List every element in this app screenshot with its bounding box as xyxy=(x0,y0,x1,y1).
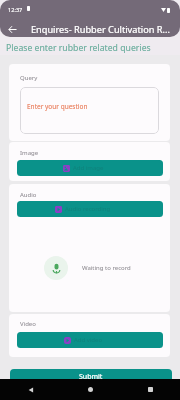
button[interactable]: Submit xyxy=(10,369,172,385)
button[interactable]: Enter your question xyxy=(20,87,159,134)
button[interactable]: Audio recording xyxy=(17,201,163,217)
staticText: Enter your question xyxy=(27,102,88,111)
staticText: 12:37 xyxy=(8,6,23,14)
staticText: Add video xyxy=(74,336,103,344)
button[interactable]: Back xyxy=(20,379,41,400)
button[interactable]: Start recording xyxy=(44,256,68,280)
staticText: Audio recording xyxy=(65,205,111,213)
staticText: Enquires- Rubber Cultivation R... xyxy=(31,23,170,36)
button[interactable]: Back xyxy=(2,19,22,37)
button[interactable]: Recent apps xyxy=(140,379,161,400)
staticText: Query xyxy=(20,74,38,82)
staticText: Please enter rubber related queries xyxy=(6,42,151,54)
staticText: Add image xyxy=(73,164,104,172)
button[interactable]: Add video xyxy=(17,332,163,348)
staticText: Audio xyxy=(20,191,37,199)
staticText: Submit xyxy=(79,372,103,382)
button[interactable]: Add image xyxy=(17,160,163,176)
staticText: Video xyxy=(20,320,36,328)
button[interactable]: Home xyxy=(80,379,101,400)
staticText: Waiting to record xyxy=(82,264,131,272)
staticText: Image xyxy=(20,149,39,157)
